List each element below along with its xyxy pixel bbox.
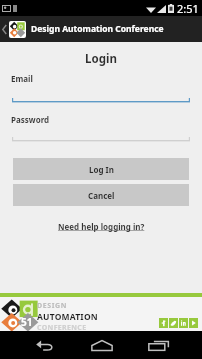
staticText: 2:51: [177, 1, 199, 16]
staticText: Login: [0, 51, 202, 67]
staticText: 51: [21, 315, 33, 329]
staticText: CONFERENCE: [37, 323, 87, 333]
button[interactable]: LinkedIn: [179, 318, 188, 328]
button[interactable]: Cancel: [13, 184, 189, 206]
button[interactable]: Recent apps: [142, 335, 174, 355]
button[interactable]: YouTube: [189, 318, 198, 328]
staticText: Need help logging in?: [58, 221, 145, 232]
staticText: DESIGN: [37, 301, 67, 311]
button[interactable]: Twitter: [169, 318, 178, 328]
staticText: Email: [11, 73, 33, 84]
staticText: Password: [11, 114, 50, 125]
button[interactable]: Back: [28, 335, 60, 355]
staticText: AUTOMATION: [37, 311, 98, 323]
button[interactable]: Back: [0, 16, 9, 42]
staticText: Log In: [89, 164, 114, 175]
staticText: Cancel: [88, 190, 115, 201]
button[interactable]: Log In: [13, 158, 189, 180]
button[interactable]: Need help logging in?: [58, 221, 145, 232]
staticText: Design Automation Conference: [31, 23, 164, 35]
button[interactable]: Facebook: [159, 318, 168, 328]
button[interactable]: Home: [86, 335, 118, 355]
